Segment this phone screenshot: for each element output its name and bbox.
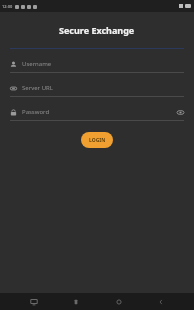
button[interactable]: Home — [110, 293, 127, 310]
button[interactable]: Screenshot — [25, 293, 42, 310]
button[interactable]: Recents — [67, 293, 84, 310]
staticText: 12:00 — [2, 4, 13, 9]
staticText: Secure Exchange — [59, 24, 135, 36]
button[interactable]: LOGIN — [81, 132, 113, 148]
staticText: Password — [22, 108, 50, 116]
staticText: Server URL — [22, 84, 53, 92]
staticText: Username — [22, 60, 52, 68]
button[interactable]: Back — [152, 293, 169, 310]
button[interactable]: Username — [10, 58, 184, 73]
button[interactable]: Server URL — [10, 82, 184, 97]
button[interactable]: Password — [10, 106, 184, 121]
button[interactable]: Show password — [177, 109, 184, 116]
staticText: LOGIN — [89, 137, 106, 144]
